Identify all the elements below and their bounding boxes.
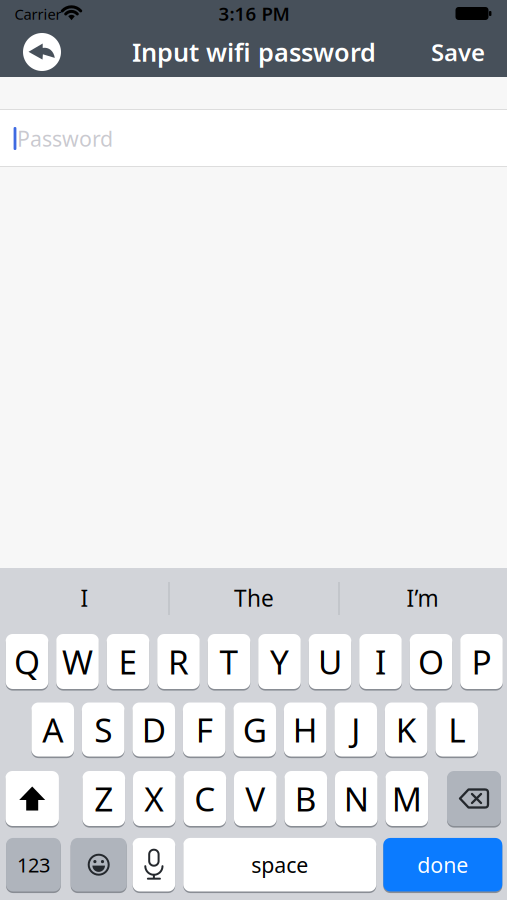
button[interactable]: C — [183, 771, 226, 826]
staticText: X — [144, 776, 164, 821]
staticText: space — [251, 850, 308, 879]
button[interactable]: G — [233, 702, 276, 756]
button[interactable]: Delete — [447, 771, 501, 826]
button[interactable]: L — [435, 702, 478, 756]
button[interactable]: K — [385, 702, 427, 756]
staticText: I’m — [406, 583, 438, 613]
button[interactable]: H — [284, 702, 326, 756]
staticText: I — [80, 583, 88, 613]
button[interactable]: Y — [258, 634, 301, 689]
button[interactable]: U — [309, 634, 351, 689]
button[interactable]: 123 — [6, 838, 61, 891]
staticText: O — [418, 639, 444, 684]
button[interactable]: R — [157, 634, 200, 689]
staticText: K — [396, 707, 417, 752]
button[interactable]: S — [82, 702, 124, 756]
staticText: P — [471, 639, 491, 684]
staticText: done — [417, 850, 468, 879]
button[interactable]: B — [284, 771, 327, 826]
button[interactable]: Back — [23, 33, 61, 71]
staticText: Carrier — [14, 4, 61, 24]
staticText: I — [375, 639, 386, 684]
staticText: V — [245, 776, 265, 821]
button[interactable]: V — [234, 771, 277, 826]
staticText: S — [94, 707, 112, 752]
staticText: B — [295, 776, 317, 821]
staticText: U — [318, 639, 342, 684]
staticText: Save — [431, 36, 485, 68]
button[interactable]: N — [335, 771, 378, 826]
staticText: J — [351, 707, 360, 752]
staticText: Input wifi password — [132, 35, 376, 69]
staticText: T — [219, 639, 238, 684]
staticText: 123 — [17, 851, 50, 878]
staticText: W — [62, 639, 93, 684]
button[interactable]: W — [56, 634, 99, 689]
button[interactable]: I’m — [338, 570, 506, 626]
button[interactable]: D — [132, 702, 175, 756]
staticText: 3:16 PM — [218, 1, 289, 26]
button[interactable]: P — [460, 634, 503, 689]
button[interactable]: Z — [82, 771, 125, 826]
staticText: H — [293, 707, 318, 752]
staticText: C — [194, 776, 215, 821]
button[interactable]: Q — [6, 634, 48, 689]
button[interactable]: The — [170, 570, 338, 626]
staticText: M — [392, 776, 422, 821]
button[interactable]: done — [383, 838, 502, 891]
staticText: The — [234, 583, 274, 613]
button[interactable]: I — [0, 570, 168, 626]
staticText: G — [243, 707, 267, 752]
staticText: L — [448, 707, 465, 752]
button[interactable]: Emoji — [71, 838, 127, 891]
button[interactable]: space — [183, 838, 376, 891]
staticText: R — [168, 639, 189, 684]
button[interactable]: Shift — [5, 771, 59, 826]
button[interactable]: A — [31, 702, 74, 756]
staticText: A — [42, 707, 63, 752]
button[interactable]: O — [410, 634, 452, 689]
button[interactable]: Save — [431, 36, 485, 68]
staticText: Y — [270, 639, 289, 684]
button[interactable]: J — [334, 702, 377, 756]
staticText: F — [196, 707, 213, 752]
button[interactable]: T — [208, 634, 250, 689]
button[interactable]: E — [107, 634, 149, 689]
button[interactable]: F — [183, 702, 225, 756]
staticText: Z — [94, 776, 113, 821]
button[interactable]: Dictation — [133, 838, 175, 891]
staticText: E — [118, 639, 137, 684]
staticText: Q — [14, 639, 40, 684]
button[interactable]: X — [133, 771, 176, 826]
staticText: N — [344, 776, 369, 821]
button[interactable]: M — [385, 771, 428, 826]
staticText: Password — [17, 124, 113, 153]
button[interactable]: I — [359, 634, 402, 689]
staticText: D — [142, 707, 166, 752]
